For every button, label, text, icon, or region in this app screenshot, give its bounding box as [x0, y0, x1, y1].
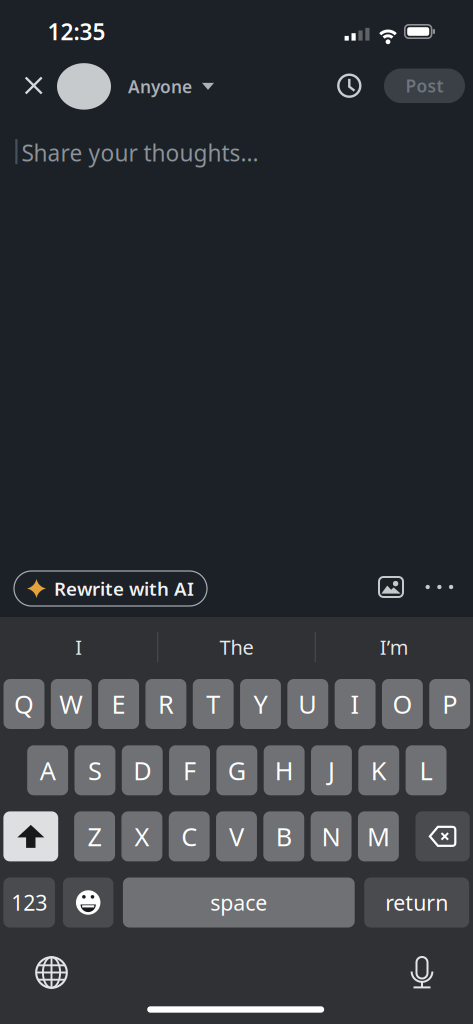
staticText: L: [419, 753, 432, 787]
button[interactable]: W: [51, 679, 92, 729]
button[interactable]: Delete: [415, 811, 470, 861]
button[interactable]: Shift: [3, 811, 58, 861]
staticText: Anyone: [128, 75, 192, 98]
button[interactable]: H: [264, 745, 305, 795]
staticText: Z: [88, 820, 102, 853]
button[interactable]: G: [216, 745, 257, 795]
staticText: F: [183, 753, 196, 787]
button[interactable]: M: [358, 811, 399, 861]
button[interactable]: D: [122, 745, 163, 795]
staticText: T: [206, 687, 220, 721]
button[interactable]: The: [166, 627, 306, 667]
button[interactable]: Q: [4, 679, 44, 729]
staticText: X: [134, 820, 149, 853]
button[interactable]: J: [311, 745, 352, 795]
staticText: Rewrite with AI: [54, 576, 194, 601]
staticText: K: [371, 753, 387, 787]
button[interactable]: Post audience: Anyone: [57, 63, 214, 110]
button[interactable]: T: [193, 679, 234, 729]
button[interactable]: Add media: [378, 576, 404, 598]
staticText: H: [275, 753, 294, 787]
button[interactable]: Dictate: [410, 956, 434, 989]
staticText: E: [112, 687, 126, 721]
staticText: A: [40, 753, 56, 787]
staticText: N: [322, 820, 341, 853]
button[interactable]: return: [364, 877, 469, 927]
button[interactable]: More options: [425, 585, 453, 589]
button[interactable]: P: [429, 679, 470, 729]
staticText: U: [298, 687, 317, 721]
button[interactable]: I: [9, 627, 149, 667]
staticText: I: [75, 634, 82, 660]
staticText: return: [385, 888, 448, 917]
button[interactable]: Y: [240, 679, 281, 729]
button[interactable]: Close: [24, 76, 43, 95]
staticText: 123: [11, 888, 47, 917]
button[interactable]: Post: [384, 68, 465, 103]
staticText: D: [133, 753, 151, 787]
staticText: B: [276, 820, 292, 853]
staticText: Share your thoughts...: [22, 138, 259, 168]
button[interactable]: R: [145, 679, 186, 729]
button[interactable]: 123: [3, 877, 55, 927]
button[interactable]: Emoji: [63, 877, 113, 927]
button[interactable]: E: [98, 679, 139, 729]
staticText: C: [181, 820, 197, 853]
staticText: 12:35: [47, 16, 105, 46]
button[interactable]: Next keyboard: [35, 956, 68, 989]
staticText: O: [392, 687, 412, 721]
staticText: J: [328, 753, 335, 787]
staticText: V: [229, 820, 244, 853]
staticText: W: [59, 687, 83, 721]
staticText: S: [88, 753, 102, 787]
staticText: Q: [14, 687, 34, 721]
button[interactable]: X: [121, 811, 162, 861]
button[interactable]: V: [216, 811, 257, 861]
staticText: Y: [253, 687, 267, 721]
staticText: Post: [405, 74, 443, 97]
button[interactable]: O: [382, 679, 423, 729]
button[interactable]: N: [311, 811, 352, 861]
staticText: M: [367, 820, 390, 853]
button[interactable]: F: [169, 745, 210, 795]
staticText: The: [219, 634, 253, 660]
button[interactable]: Schedule post: [335, 72, 363, 100]
staticText: I: [351, 687, 360, 721]
staticText: P: [442, 687, 457, 721]
button[interactable]: I: [335, 679, 375, 729]
staticText: I’m: [380, 634, 409, 660]
button[interactable]: U: [287, 679, 328, 729]
button[interactable]: C: [169, 811, 210, 861]
button[interactable]: A: [27, 745, 68, 795]
staticText: G: [228, 753, 246, 787]
staticText: space: [210, 888, 267, 917]
staticText: R: [158, 687, 174, 721]
button[interactable]: B: [263, 811, 304, 861]
button[interactable]: I’m: [324, 627, 464, 667]
button[interactable]: space: [123, 877, 355, 927]
button[interactable]: L: [406, 745, 446, 795]
button[interactable]: S: [74, 745, 115, 795]
button[interactable]: Z: [74, 811, 115, 861]
button[interactable]: Rewrite with AI: [14, 571, 207, 606]
button[interactable]: K: [358, 745, 399, 795]
